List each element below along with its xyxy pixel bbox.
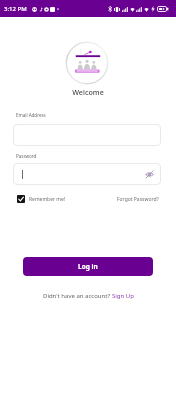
staticText: Remember me!: [29, 196, 66, 203]
staticText: 3:12 PM: [4, 5, 27, 13]
staticText: Didn't have an account?: [43, 292, 112, 300]
button[interactable]: [13, 124, 161, 146]
button[interactable]: Sign Up: [112, 292, 134, 300]
staticText: Log in: [78, 262, 98, 271]
staticText: Welcome: [0, 87, 176, 97]
button[interactable]: Forgot Password?: [117, 196, 159, 203]
staticText: Password: [16, 153, 37, 159]
button[interactable]: Remember me!: [17, 195, 66, 203]
staticText: Email Address: [16, 112, 46, 118]
button[interactable]: Show password: [13, 163, 161, 185]
button[interactable]: Log in: [23, 257, 153, 276]
button[interactable]: Show password: [145, 170, 154, 179]
